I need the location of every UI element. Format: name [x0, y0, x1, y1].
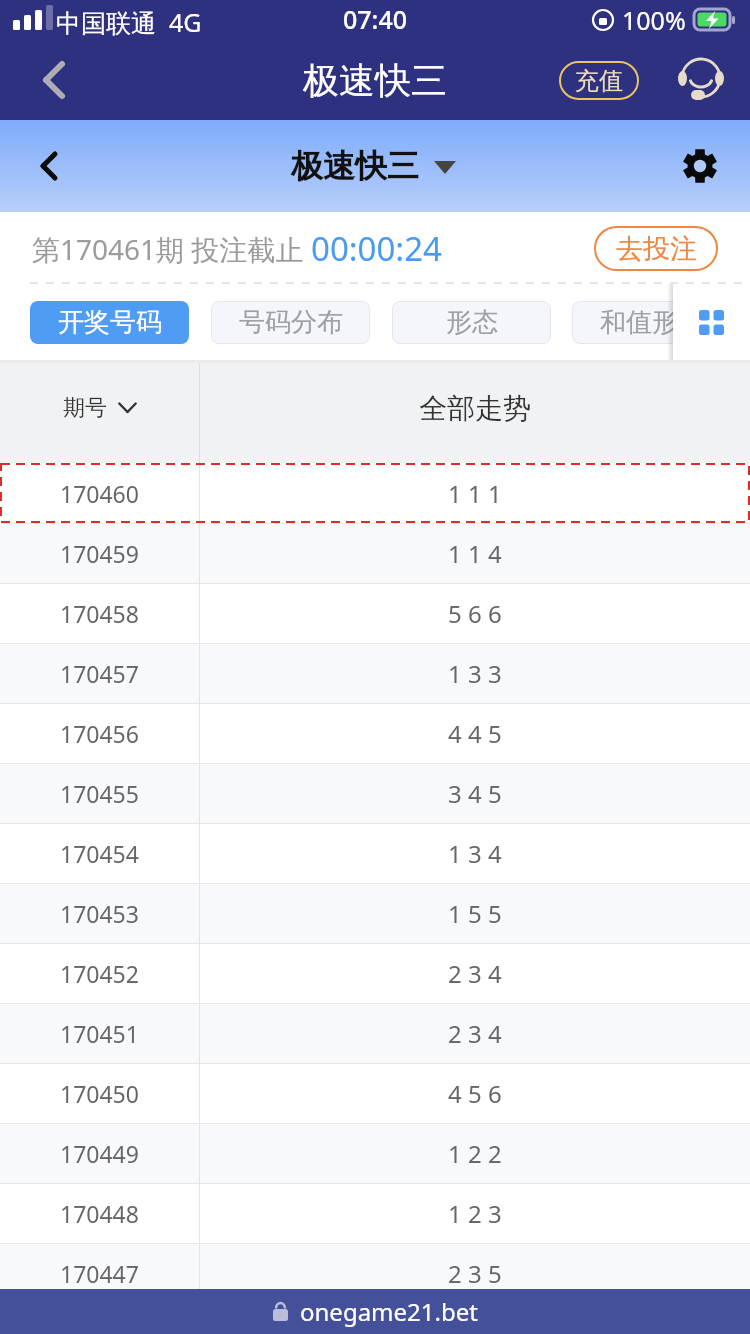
button[interactable]: Settings — [674, 140, 726, 192]
staticText: 和值形态 — [600, 306, 704, 339]
button[interactable]: 170456 — [0, 703, 750, 763]
staticText: 开奖号码 — [58, 306, 162, 339]
staticText: 号码分布 — [239, 306, 343, 339]
button[interactable]: 170449 — [0, 1123, 750, 1183]
button[interactable]: 形态 — [392, 301, 551, 344]
staticText: 170447 — [60, 1258, 139, 1289]
staticText: 07:40 — [343, 2, 408, 36]
button[interactable]: 期号 — [0, 363, 199, 463]
staticText: 170453 — [60, 898, 139, 929]
staticText: 2 3 4 — [448, 1017, 502, 1050]
staticText: 第170461期 投注截止 — [32, 230, 311, 268]
staticText: 170448 — [60, 1198, 139, 1229]
button[interactable]: 开奖号码 — [30, 301, 189, 344]
staticText: 170459 — [60, 538, 139, 569]
button[interactable]: 170448 — [0, 1183, 750, 1243]
staticText: 期号 — [63, 394, 107, 422]
staticText: 170460 — [60, 478, 139, 509]
staticText: 170449 — [60, 1138, 139, 1169]
staticText: 中国联通 4G — [56, 5, 202, 39]
staticText: 1 3 4 — [448, 837, 502, 870]
staticText: 3 4 5 — [448, 777, 502, 810]
staticText: 5 6 6 — [448, 597, 502, 630]
button[interactable]: Back — [0, 120, 98, 212]
staticText: 170456 — [60, 718, 139, 749]
staticText: 1 3 3 — [448, 657, 502, 690]
staticText: 4 4 5 — [448, 717, 502, 750]
staticText: 2 3 5 — [448, 1257, 502, 1290]
button[interactable]: 170455 — [0, 763, 750, 823]
button[interactable]: 170460 — [0, 463, 750, 523]
staticText: 170452 — [60, 958, 139, 989]
staticText: 170454 — [60, 838, 139, 869]
button[interactable]: 170447 — [0, 1243, 750, 1303]
button[interactable]: 170453 — [0, 883, 750, 943]
staticText: 170457 — [60, 658, 139, 689]
button[interactable]: 极速快三 — [291, 146, 457, 186]
staticText: 1 1 4 — [448, 537, 502, 570]
staticText: 全部走势 — [419, 391, 531, 426]
staticText: 170455 — [60, 778, 139, 809]
button[interactable]: 170458 — [0, 583, 750, 643]
staticText: 去投注 — [616, 232, 697, 266]
staticText: onegame21.bet — [300, 1295, 478, 1328]
staticText: 1 1 1 — [448, 477, 502, 510]
staticText: 1 2 2 — [448, 1137, 502, 1170]
staticText: 极速快三 — [291, 146, 419, 186]
staticText: 170458 — [60, 598, 139, 629]
button[interactable]: Back — [0, 40, 104, 120]
button[interactable]: 充值 — [559, 61, 639, 100]
button[interactable]: 去投注 — [594, 226, 718, 271]
staticText: 形态 — [446, 306, 498, 339]
button[interactable]: 和值形态 — [572, 301, 731, 344]
staticText: 100% — [622, 3, 686, 37]
button[interactable]: 170452 — [0, 943, 750, 1003]
staticText: 00:00:24 — [311, 226, 442, 271]
button[interactable]: 号码分布 — [211, 301, 370, 344]
button[interactable]: Customer service — [672, 51, 730, 109]
staticText: 170451 — [60, 1018, 139, 1049]
button[interactable]: 170459 — [0, 523, 750, 583]
staticText: 1 2 3 — [448, 1197, 502, 1230]
staticText: 170450 — [60, 1078, 139, 1109]
staticText: 4 5 6 — [448, 1077, 502, 1110]
button[interactable]: Grid view — [673, 284, 750, 360]
button[interactable]: 170450 — [0, 1063, 750, 1123]
button[interactable]: 170451 — [0, 1003, 750, 1063]
staticText: 充值 — [575, 66, 623, 96]
button[interactable]: 170454 — [0, 823, 750, 883]
staticText: 2 3 4 — [448, 957, 502, 990]
staticText: 极速快三 — [303, 58, 447, 103]
staticText: 1 5 5 — [448, 897, 502, 930]
button[interactable]: 170457 — [0, 643, 750, 703]
